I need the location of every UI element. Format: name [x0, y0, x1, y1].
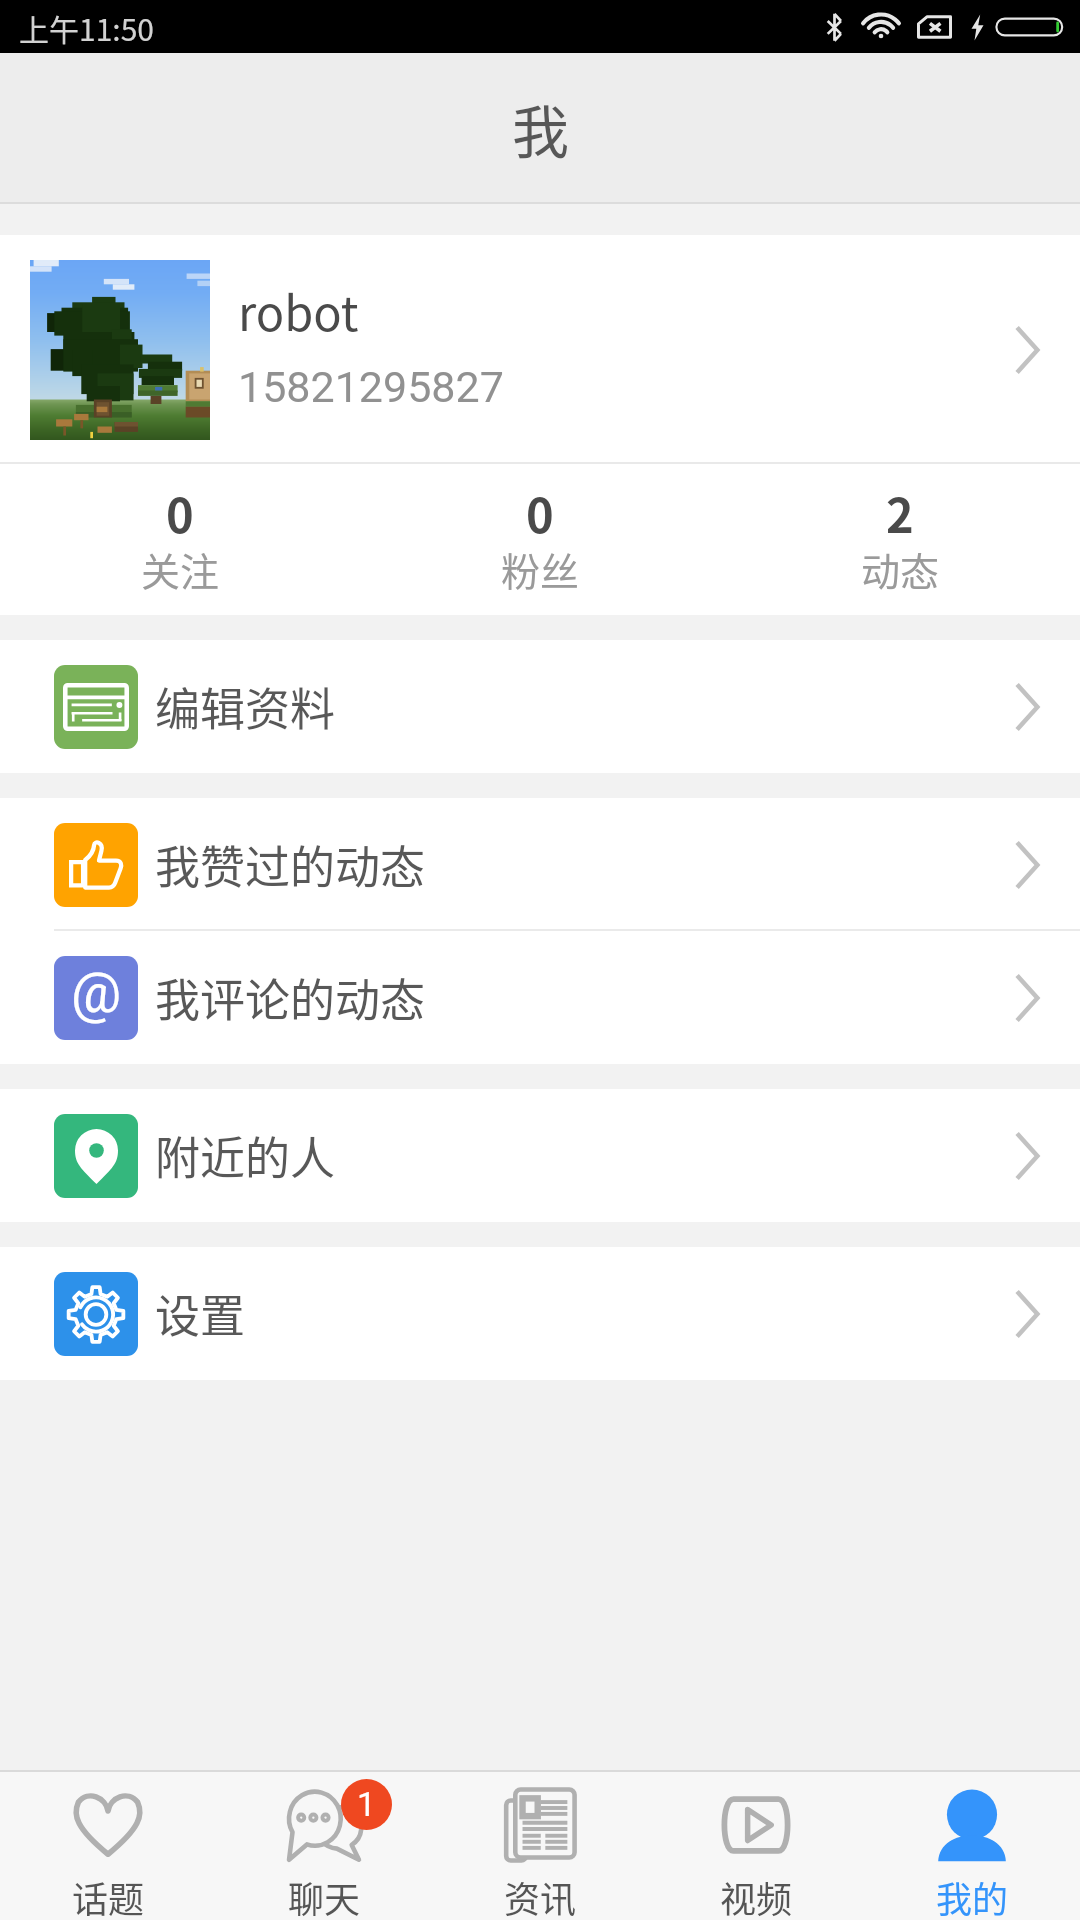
button[interactable]: News — [432, 1772, 648, 1920]
staticText: 视频 — [720, 1871, 793, 1920]
button[interactable]: @ — [0, 931, 1080, 1064]
button[interactable]: Video — [648, 1772, 864, 1920]
staticText: robot — [238, 276, 359, 344]
staticText: 编辑资料 — [155, 674, 336, 739]
button[interactable]: 设置 — [0, 1247, 1080, 1380]
staticText: 资讯 — [504, 1871, 577, 1920]
staticText: 我的 — [936, 1871, 1009, 1920]
staticText: 15821295827 — [238, 362, 504, 412]
button[interactable]: robot — [0, 235, 1080, 464]
staticText: 设置 — [155, 1281, 246, 1346]
button[interactable]: 0 — [360, 464, 720, 615]
button[interactable]: Topics — [0, 1772, 216, 1920]
staticText: 附近的人 — [155, 1123, 336, 1188]
staticText: 我赞过的动态 — [155, 832, 426, 897]
button[interactable]: 编辑资料 — [0, 640, 1080, 773]
staticText: 我评论的动态 — [155, 965, 426, 1030]
button[interactable]: 2 — [720, 464, 1080, 615]
staticText: 上午11:50 — [19, 6, 154, 49]
staticText: 0 — [166, 478, 194, 546]
button[interactable]: 我赞过的动态 — [0, 798, 1080, 931]
staticText: 动态 — [861, 541, 940, 597]
staticText: 粉丝 — [501, 541, 580, 597]
staticText: @ — [71, 960, 122, 1026]
staticText: 聊天 — [288, 1871, 361, 1920]
button[interactable]: Mine — [864, 1772, 1080, 1920]
staticText: 关注 — [141, 541, 220, 597]
button[interactable]: Chat — [216, 1772, 432, 1920]
staticText: 话题 — [72, 1871, 145, 1920]
staticText: 1 — [357, 1785, 376, 1824]
button[interactable]: 附近的人 — [0, 1089, 1080, 1222]
staticText: 2 — [886, 478, 914, 546]
button[interactable]: 0 — [0, 464, 360, 615]
staticText: 我 — [512, 87, 569, 170]
staticText: 0 — [526, 478, 554, 546]
